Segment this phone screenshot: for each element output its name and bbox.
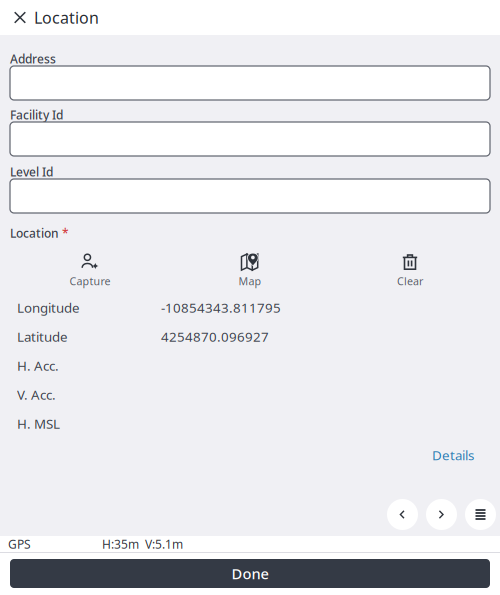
button[interactable]: Capture [10, 247, 170, 291]
staticText: Facility Id [10, 107, 63, 123]
staticText: -10854343.811795 [161, 299, 281, 316]
staticText: Done [231, 564, 268, 583]
button[interactable]: Clear [330, 247, 490, 291]
button[interactable]: Close [6, 0, 34, 35]
button[interactable]: Done [10, 559, 490, 588]
button[interactable]: More [465, 499, 496, 530]
staticText: Capture [69, 274, 110, 288]
button[interactable]: Next [426, 499, 457, 530]
button[interactable]: Previous [387, 499, 418, 530]
staticText: H. Acc. [17, 357, 59, 374]
staticText: Level Id [10, 164, 53, 180]
button[interactable]: Map [170, 247, 330, 291]
staticText: Map [238, 274, 261, 288]
staticText: Clear [397, 274, 423, 288]
staticText: H. MSL [17, 415, 60, 432]
staticText: V. Acc. [17, 386, 56, 403]
staticText: * [62, 225, 69, 241]
staticText: Latitude [17, 328, 68, 345]
button[interactable]: Details [432, 447, 490, 463]
staticText: 4254870.096927 [161, 328, 269, 345]
staticText: Address [10, 51, 56, 67]
staticText: H:35m V:5.1m [102, 536, 183, 552]
staticText: GPS [8, 536, 31, 552]
staticText: Location [34, 7, 99, 28]
staticText: Location [10, 225, 59, 241]
staticText: Longitude [17, 299, 80, 316]
staticText: Details [432, 446, 474, 464]
